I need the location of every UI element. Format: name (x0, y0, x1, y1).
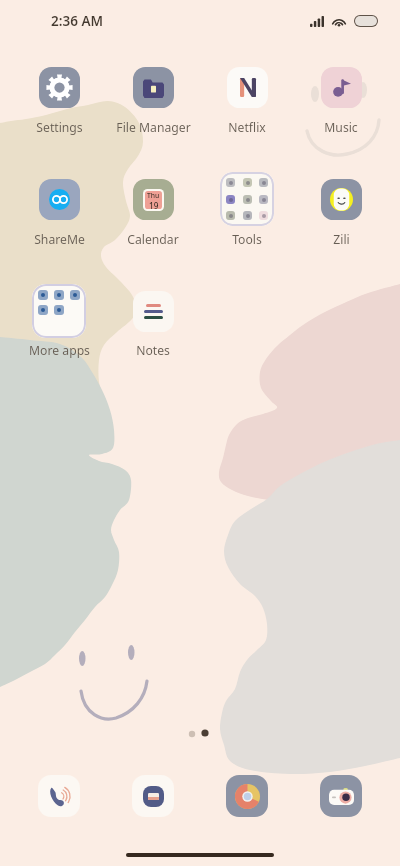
button[interactable]: Tools (200, 171, 294, 247)
button[interactable]: Camera (320, 775, 362, 817)
staticText: 2:36 AM (51, 12, 104, 30)
staticText: Tools (232, 231, 262, 248)
button[interactable]: Settings (12, 59, 106, 135)
button[interactable]: Zili (294, 171, 388, 247)
staticText: Calendar (127, 231, 179, 248)
button[interactable]: Chrome (226, 775, 268, 817)
staticText: Netflix (228, 119, 266, 136)
staticText: Zili (333, 231, 350, 248)
button[interactable]: Messages (132, 775, 174, 817)
staticText: Music (324, 119, 358, 136)
button[interactable]: ShareMe (12, 171, 106, 247)
staticText: More apps (29, 342, 90, 359)
button[interactable]: Notes (106, 283, 200, 359)
staticText: Thu (147, 191, 160, 200)
staticText: ShareMe (34, 231, 85, 248)
button[interactable]: Thu (106, 171, 200, 247)
button[interactable]: Phone (38, 775, 80, 817)
button[interactable]: Music (294, 59, 388, 135)
button[interactable]: More apps (12, 283, 106, 359)
staticText: Settings (36, 119, 83, 136)
button[interactable]: File Manager (106, 59, 200, 135)
staticText: File Manager (116, 119, 191, 136)
button[interactable]: Netflix (200, 59, 294, 135)
staticText: Notes (136, 342, 170, 359)
staticText: 19 (149, 200, 159, 209)
